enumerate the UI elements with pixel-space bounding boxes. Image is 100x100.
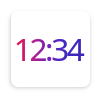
button[interactable]: 12:34 [11,11,90,87]
staticText: 12:34 [14,27,83,70]
